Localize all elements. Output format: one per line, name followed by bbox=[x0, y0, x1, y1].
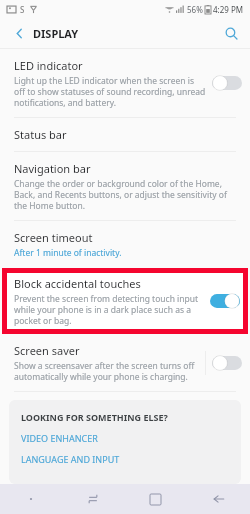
staticText: Show a screensaver after the screen turn… bbox=[14, 360, 195, 382]
button[interactable]: VIDEO ENHANCER bbox=[21, 432, 229, 444]
button[interactable]: Screen timeout bbox=[0, 221, 250, 268]
staticText: Prevent the screen from detecting touch … bbox=[14, 293, 199, 326]
button[interactable]: Toggle on bbox=[210, 293, 240, 309]
staticText: DISPLAY bbox=[33, 26, 79, 41]
button[interactable]: LED indicator bbox=[0, 49, 250, 117]
button[interactable]: Search bbox=[220, 22, 242, 44]
staticText: 4:29 PM bbox=[213, 4, 244, 15]
button[interactable]: Toggle off bbox=[212, 355, 242, 371]
staticText: Status bar bbox=[14, 127, 67, 142]
staticText: 56% bbox=[187, 4, 203, 15]
staticText: Change the order or background color of … bbox=[14, 178, 227, 211]
staticText: Light up the LED indicator when the scre… bbox=[14, 75, 206, 108]
button[interactable]: Back bbox=[187, 484, 250, 514]
button[interactable]: Toggle off bbox=[212, 75, 242, 91]
staticText: Block accidental touches bbox=[14, 276, 141, 291]
button[interactable]: Back bbox=[8, 22, 30, 44]
button[interactable]: Status bar bbox=[0, 118, 250, 151]
button[interactable]: Screen saver bbox=[0, 334, 250, 391]
staticText: S bbox=[20, 4, 25, 15]
staticText: After 1 minute of inactivity. bbox=[14, 247, 122, 259]
staticText: Navigation bar bbox=[14, 161, 91, 176]
button[interactable]: Switch apps bbox=[62, 484, 124, 514]
staticText: Screen saver bbox=[14, 343, 80, 358]
staticText: LANGUAGE AND INPUT bbox=[21, 453, 120, 465]
button[interactable]: Navigation bar bbox=[0, 152, 250, 220]
button[interactable]: LANGUAGE AND INPUT bbox=[21, 453, 229, 465]
staticText: VIDEO ENHANCER bbox=[21, 432, 98, 444]
staticText: Screen timeout bbox=[14, 230, 93, 245]
button[interactable]: Block accidental touches bbox=[2, 268, 248, 334]
staticText: LED indicator bbox=[14, 58, 83, 73]
button[interactable]: Menu dot bbox=[0, 484, 62, 514]
button[interactable]: Recents bbox=[124, 484, 187, 514]
staticText: LOOKING FOR SOMETHING ELSE? bbox=[21, 411, 168, 423]
